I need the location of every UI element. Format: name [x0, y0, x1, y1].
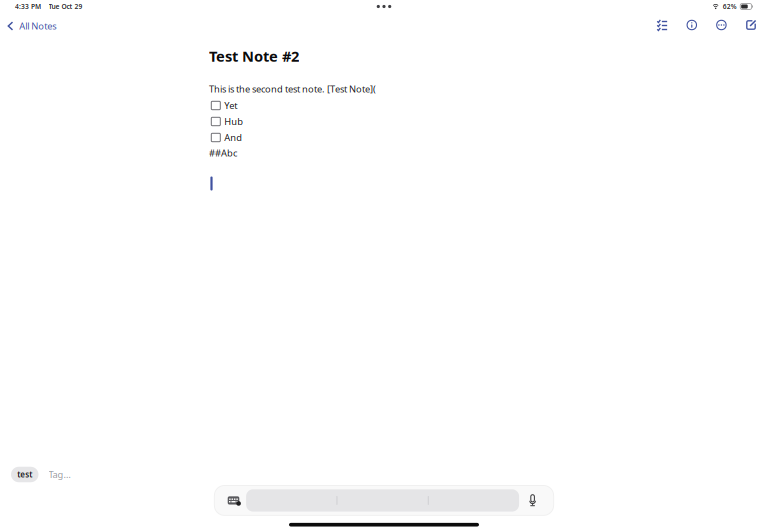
staticText: This is the second test note. [Test Note… [209, 83, 376, 95]
staticText: All Notes [19, 20, 56, 32]
staticText: test [17, 469, 32, 480]
button[interactable]: test [11, 467, 38, 482]
button[interactable]: Tag… [48, 467, 70, 482]
staticText: 4:33 PM [15, 2, 41, 11]
staticText: Tue Oct 29 [48, 2, 82, 11]
staticText: 62% [723, 2, 737, 11]
button[interactable]: New note [740, 14, 762, 36]
staticText: Tag… [48, 468, 70, 481]
staticText: And [224, 131, 242, 144]
button[interactable]: Multitasking options [364, 0, 404, 13]
button[interactable]: Note info [681, 14, 703, 36]
staticText: Yet [224, 99, 237, 112]
button[interactable]: All Notes [0, 14, 64, 36]
button[interactable]: Show keyboard [221, 489, 246, 511]
staticText: Test Note #2 [209, 46, 299, 66]
staticText: Hub [224, 115, 243, 128]
button[interactable]: Checklist [651, 14, 673, 36]
button[interactable]: More [710, 14, 732, 36]
staticText: ##Abc [209, 147, 237, 159]
button[interactable]: Dictate [519, 489, 546, 511]
